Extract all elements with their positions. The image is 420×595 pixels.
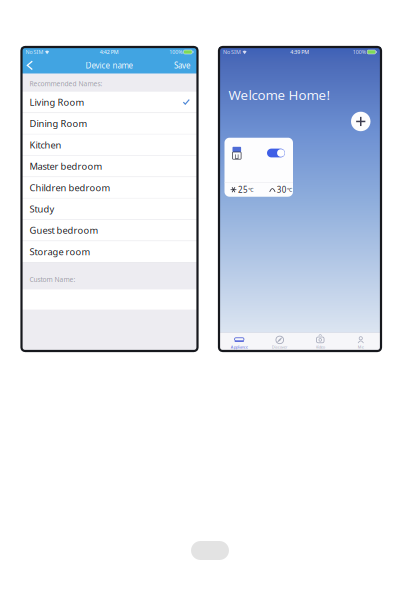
- staticText: Custom Name:: [29, 275, 75, 284]
- staticText: Save: [174, 60, 191, 71]
- staticText: ℃: [287, 186, 292, 193]
- staticText: Appliance: [231, 344, 248, 349]
- button[interactable]: Discover: [259, 332, 300, 352]
- button[interactable]: Guest bedroom: [21, 220, 197, 241]
- button[interactable]: [21, 289, 197, 310]
- staticText: Guest bedroom: [29, 224, 98, 236]
- staticText: Welcome Home!: [228, 86, 330, 104]
- staticText: ℃: [248, 186, 253, 193]
- button[interactable]: Video: [300, 332, 340, 352]
- staticText: Study: [29, 203, 54, 215]
- button[interactable]: Master bedroom: [21, 156, 197, 177]
- button[interactable]: Study: [21, 198, 197, 220]
- staticText: Storage room: [29, 245, 90, 258]
- staticText: Kitchen: [29, 139, 61, 151]
- button[interactable]: Kitchen: [21, 134, 197, 156]
- staticText: Discover: [272, 344, 288, 349]
- staticText: 100%: [169, 48, 182, 56]
- staticText: 4:39 PM: [290, 48, 309, 56]
- button[interactable]: Appliance: [219, 332, 259, 352]
- staticText: Living Room: [29, 96, 84, 108]
- button[interactable]: Me: [340, 332, 381, 352]
- staticText: 4:42 PM: [100, 48, 119, 56]
- button[interactable]: Living Room: [21, 92, 197, 113]
- staticText: 30: [277, 184, 287, 195]
- staticText: 100%: [353, 48, 366, 56]
- button[interactable]: Save: [168, 56, 197, 74]
- button[interactable]: Power toggle: [267, 149, 285, 157]
- button[interactable]: Storage room: [21, 241, 197, 262]
- staticText: Video: [316, 344, 325, 349]
- staticText: Children bedroom: [29, 181, 110, 194]
- staticText: Dining Room: [29, 117, 87, 130]
- staticText: No SIM: [223, 48, 241, 56]
- staticText: 25: [238, 184, 248, 195]
- staticText: No SIM: [25, 48, 43, 56]
- staticText: Recommended Names:: [29, 79, 102, 88]
- button[interactable]: Children bedroom: [21, 177, 197, 198]
- staticText: Master bedroom: [29, 160, 102, 172]
- staticText: Device name: [85, 60, 133, 71]
- button[interactable]: Back: [21, 57, 39, 74]
- button[interactable]: Add device: [351, 112, 370, 131]
- staticText: Me: [358, 344, 364, 349]
- button[interactable]: Dining Room: [21, 113, 197, 134]
